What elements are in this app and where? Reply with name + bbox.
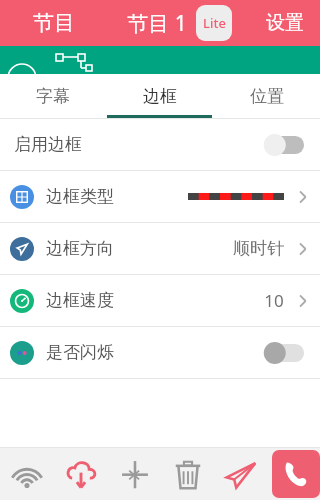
button[interactable]: Download	[54, 448, 108, 500]
button[interactable]: 是否闪烁	[258, 342, 306, 364]
staticText: 边框类型	[46, 186, 114, 207]
button[interactable]: 边框速度	[0, 275, 320, 326]
staticText: 边框	[143, 86, 177, 107]
staticText: 节目	[33, 10, 75, 36]
button[interactable]: 字幕	[0, 74, 106, 118]
button[interactable]: Send	[214, 448, 267, 500]
staticText: 设置	[266, 11, 304, 35]
button[interactable]: 位置	[213, 74, 320, 118]
button[interactable]: 边框方向	[0, 223, 320, 274]
staticText: 启用边框	[14, 134, 82, 155]
staticText: 10	[264, 289, 284, 312]
button[interactable]: 启用边框	[0, 119, 320, 170]
button[interactable]: 边框	[106, 74, 213, 118]
button[interactable]: Call	[272, 450, 320, 498]
button[interactable]: 边框类型	[0, 171, 320, 222]
staticText: 字幕	[36, 86, 70, 107]
button[interactable]: Lite	[196, 5, 232, 41]
button[interactable]: WiFi	[0, 448, 54, 500]
staticText: 是否闪烁	[46, 342, 114, 363]
staticText: 顺时针	[233, 238, 284, 259]
button[interactable]: 启用边框	[258, 134, 306, 156]
staticText: 边框速度	[46, 290, 114, 311]
button[interactable]: 是否闪烁	[0, 327, 320, 378]
staticText: 位置	[250, 86, 284, 107]
button[interactable]: Anchor	[108, 448, 161, 500]
staticText: 边框方向	[46, 238, 114, 259]
button[interactable]: 设置	[250, 0, 320, 46]
staticText: Lite	[203, 14, 226, 32]
button[interactable]: 节目	[0, 0, 108, 46]
button[interactable]: Delete	[161, 448, 214, 500]
staticText: 节目 1	[127, 9, 187, 38]
